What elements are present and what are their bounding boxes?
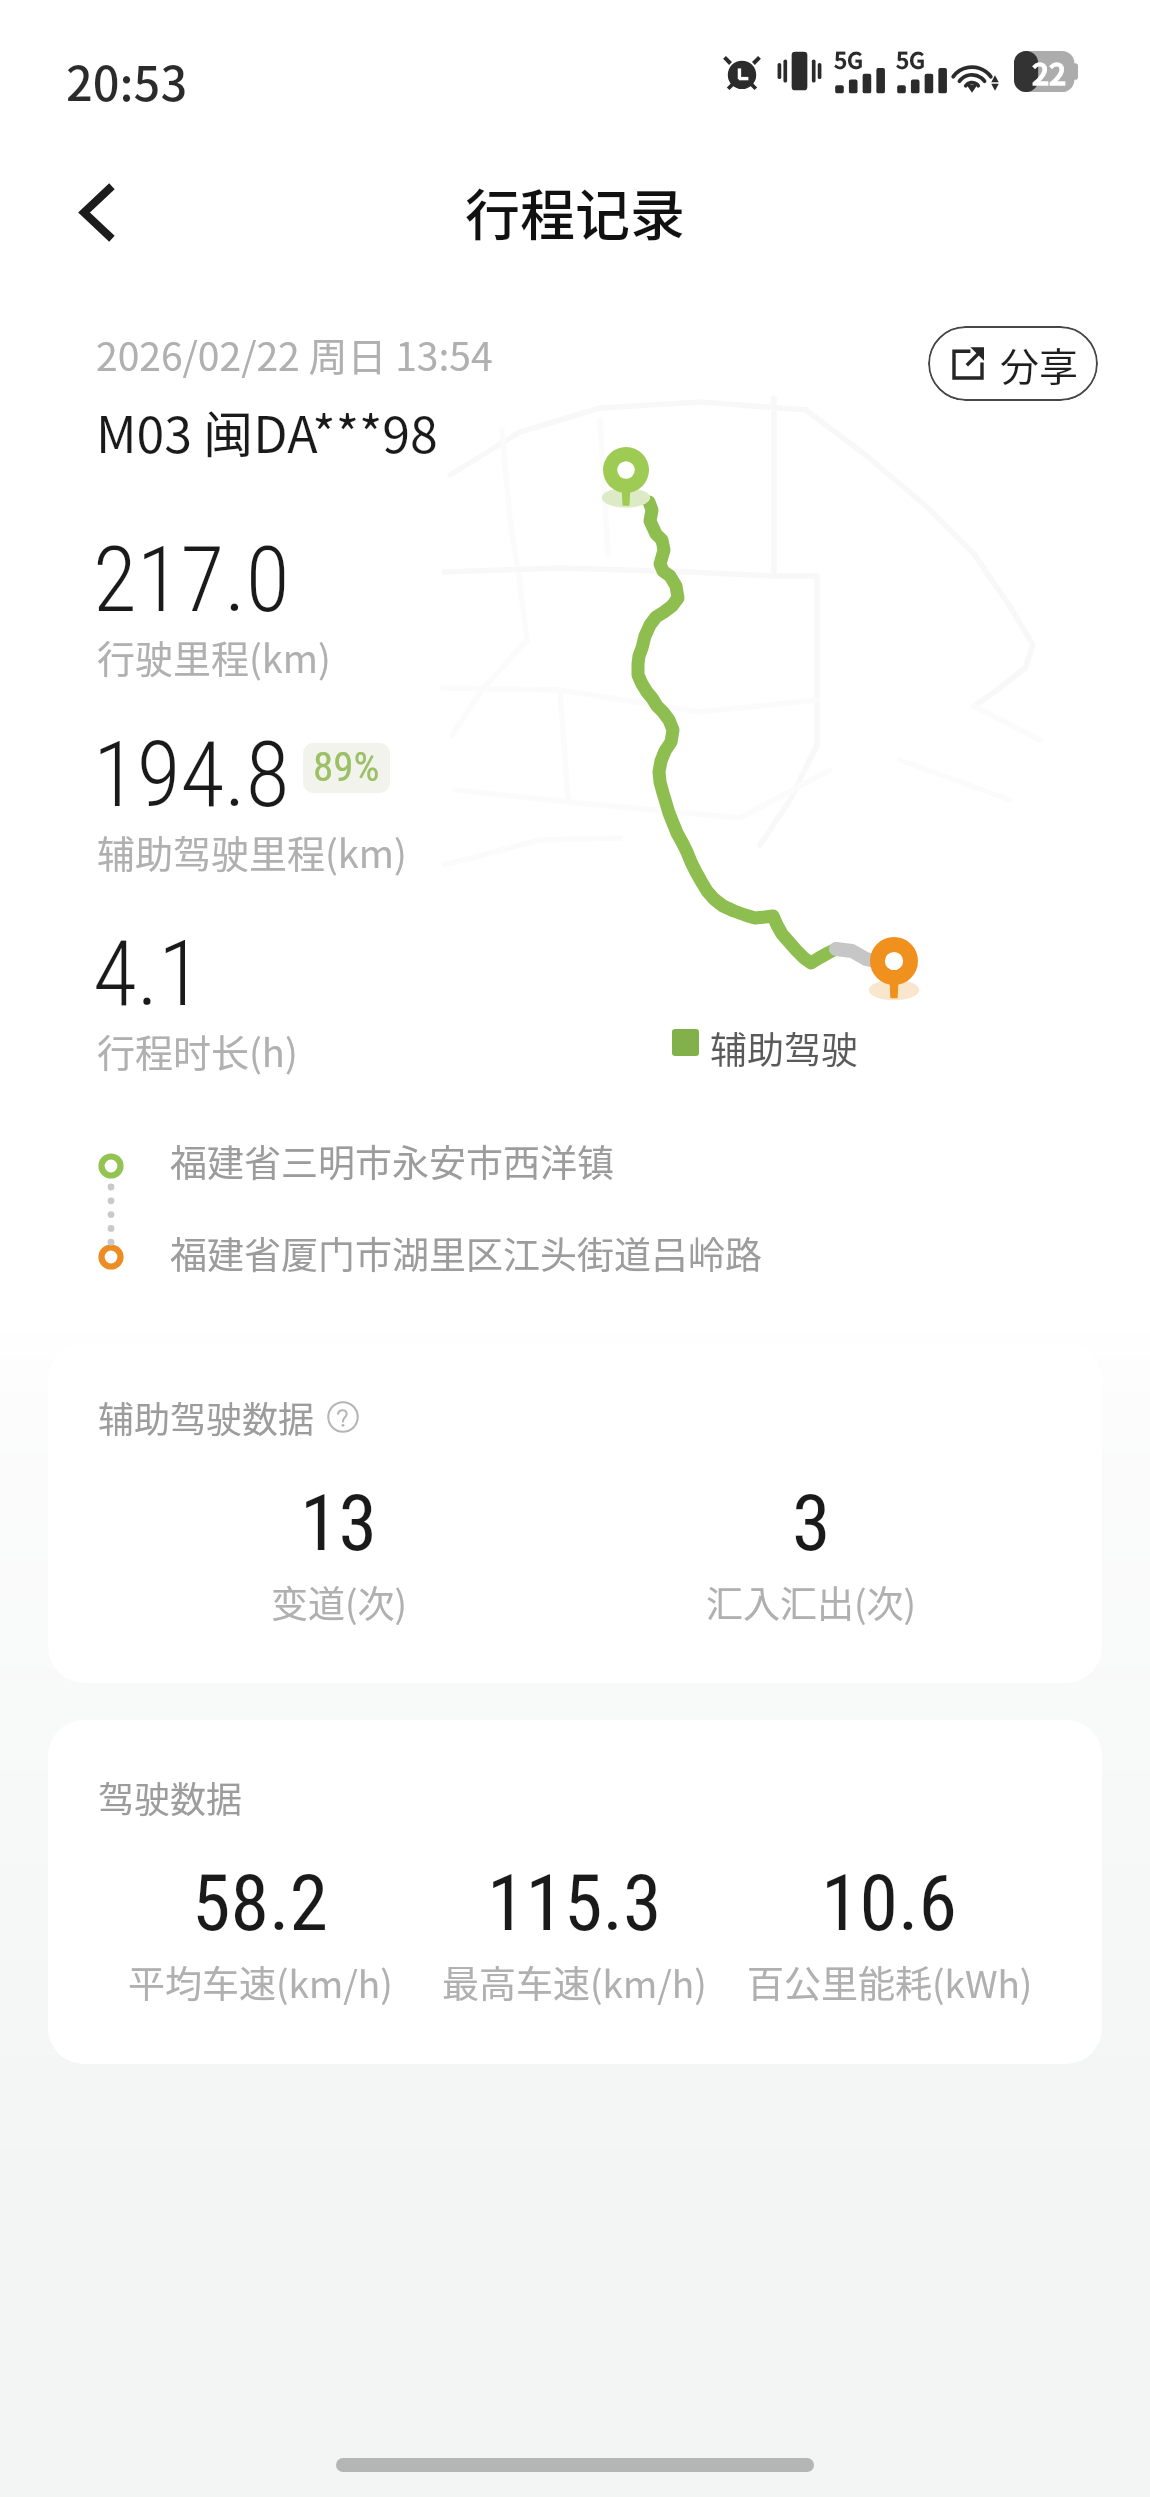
staticText: 5G <box>896 42 926 75</box>
staticText: 3 <box>792 1478 831 1569</box>
button[interactable]: 辅助驾驶数据 <box>48 1344 1102 1683</box>
staticText: 行驶里程(km) <box>97 629 331 684</box>
staticText: 22 <box>1032 50 1067 91</box>
staticText: 4.1 <box>93 922 203 1027</box>
staticText: 20:53 <box>66 46 188 114</box>
staticText: 汇入汇出(次) <box>706 1575 917 1629</box>
staticText: 行程记录 <box>465 171 686 251</box>
staticText: 福建省厦门市湖里区江头街道吕岭路 <box>170 1226 762 1280</box>
button[interactable]: 驾驶数据 <box>48 1720 1102 2064</box>
staticText: 辅助驾驶里程(km) <box>97 824 407 879</box>
staticText: 变道(次) <box>271 1575 408 1629</box>
staticText: 194.8 <box>93 723 290 828</box>
staticText: 2026/02/22 周日 13:54 <box>96 326 493 382</box>
staticText: 217.0 <box>93 528 290 633</box>
staticText: 百公里能耗(kWh) <box>747 1955 1033 2009</box>
staticText: 驾驶数据 <box>98 1771 243 1823</box>
staticText: 辅助驾驶数据 <box>98 1391 315 1443</box>
staticText: 58.2 <box>192 1858 329 1949</box>
staticText: 10.6 <box>821 1858 958 1949</box>
staticText: 分享 <box>1000 336 1079 392</box>
staticText: 平均车速(km/h) <box>128 1955 393 2009</box>
staticText: 115.3 <box>487 1858 662 1949</box>
staticText: M03 闽DA***98 <box>96 395 438 467</box>
staticText: 辅助驾驶 <box>710 1021 858 1075</box>
staticText: 5G <box>834 42 864 75</box>
button[interactable]: Back <box>46 162 146 262</box>
staticText: 13 <box>300 1478 378 1569</box>
button[interactable]: Help <box>323 1397 363 1437</box>
staticText: 最高车速(km/h) <box>442 1955 707 2009</box>
staticText: 行程时长(h) <box>97 1023 298 1078</box>
button[interactable]: 分享 <box>928 326 1098 401</box>
staticText: 89% <box>313 743 380 791</box>
staticText: 福建省三明市永安市西洋镇 <box>170 1134 614 1188</box>
